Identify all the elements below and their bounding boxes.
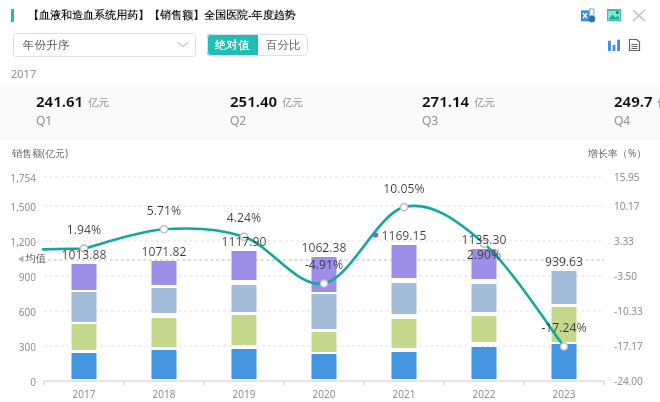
staticText: -17.17 [614,339,643,353]
staticText: -10.33 [614,304,643,318]
button[interactable]: Table view [625,35,645,53]
staticText: 900 [0,270,36,284]
staticText: 增长率（%） [588,146,647,160]
staticText: 1071.82 [124,243,204,260]
staticText: 1062.38 [284,239,364,256]
staticText: 2017 [11,66,37,81]
staticText: 0 [0,375,36,389]
button[interactable]: Export Excel [578,6,598,25]
staticText: 1169.15 [364,227,444,244]
staticText: 271.14 [422,91,470,111]
staticText: -24.00 [614,374,643,388]
staticText: 300 [0,340,36,354]
staticText: 亿元 [657,96,660,109]
button[interactable]: 年份升序 [13,33,196,57]
staticText: 241.61 [36,91,84,111]
staticText: 5.71% [124,202,204,219]
button[interactable]: Export image [604,6,624,25]
staticText: 2021 [374,387,434,401]
staticText: 绝对值 [215,38,250,52]
staticText: 年份升序 [23,38,69,52]
staticText: 4.24% [204,209,284,226]
staticText: 15.95 [614,170,640,184]
staticText: 10.05% [364,180,444,197]
staticText: 2020 [294,387,354,401]
staticText: 600 [0,305,36,319]
staticText: -3.50 [614,269,638,283]
staticText: 1,754 [0,171,36,185]
staticText: 亿元 [474,96,495,109]
staticText: Q3 [422,112,439,128]
staticText: 1135.30 [444,231,524,248]
staticText: 均值 [25,252,46,265]
staticText: 【血液和造血系统用药】【销售额】全国医院-年度趋势 [28,7,296,22]
staticText: 2017 [54,387,114,401]
staticText: Q4 [614,112,631,128]
button[interactable]: Close [629,5,649,25]
staticText: Q2 [230,112,247,128]
staticText: 2019 [214,387,274,401]
staticText: -4.91% [284,256,364,273]
staticText: 251.40 [230,91,278,111]
staticText: 销售额(亿元) [12,146,68,160]
staticText: 939.63 [524,253,604,270]
staticText: 2023 [534,387,594,401]
staticText: 10.17 [614,199,640,213]
staticText: 2018 [134,387,194,401]
staticText: -17.24% [524,319,604,336]
button[interactable]: Chart view [604,35,624,53]
button[interactable]: 百分比 [258,34,308,56]
staticText: 1,200 [0,235,36,249]
staticText: 2.90% [444,246,524,263]
staticText: 百分比 [266,38,301,52]
staticText: Q1 [36,112,53,128]
button[interactable]: 绝对值 [207,34,258,56]
staticText: 1.94% [44,221,124,238]
staticText: 亿元 [88,96,109,109]
staticText: 3.33 [614,234,634,248]
staticText: 1117.90 [204,233,284,250]
staticText: 2022 [454,387,514,401]
staticText: 1,500 [0,200,36,214]
staticText: 249.7 [614,91,653,111]
staticText: 1013.88 [44,246,124,263]
staticText: 亿元 [282,96,303,109]
